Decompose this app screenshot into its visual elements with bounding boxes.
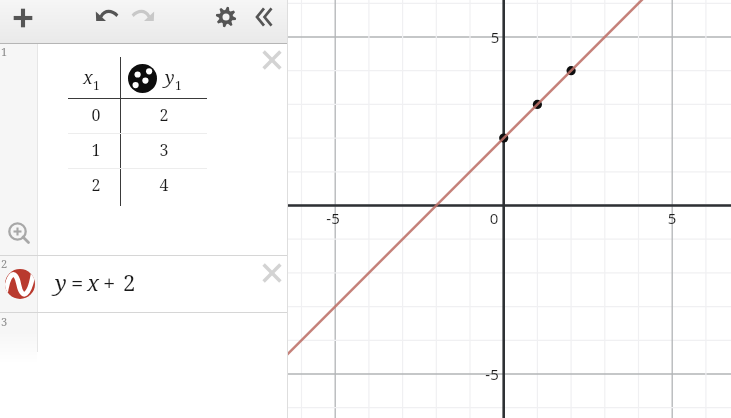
button[interactable]: Delete table [260, 48, 284, 72]
button[interactable]: 2 [0, 256, 288, 313]
staticText: 2 [149, 104, 179, 126]
staticText: 1 [93, 77, 100, 93]
button[interactable]: Settings [207, 0, 245, 36]
button[interactable]: Zoom to fit [7, 221, 32, 246]
staticText: 5 [475, 27, 515, 47]
staticText: 3 [149, 139, 179, 161]
staticText: 1 [1, 44, 8, 59]
staticText: y [165, 65, 175, 90]
button[interactable]: Toggle plot [5, 269, 35, 299]
staticText: -5 [472, 364, 512, 384]
staticText: 1 [81, 139, 111, 161]
button[interactable]: 1 [0, 44, 288, 256]
staticText: 3 [1, 314, 8, 329]
button[interactable]: Undo [88, 0, 126, 35]
staticText: x [87, 267, 100, 297]
button[interactable]: Delete expression [260, 261, 284, 285]
button[interactable]: Collapse panel [245, 0, 283, 36]
staticText: 1 [175, 77, 182, 93]
button[interactable]: Point style [128, 64, 157, 93]
staticText: 4 [149, 174, 179, 196]
button[interactable]: Add expression [4, 0, 42, 37]
staticText: y [55, 267, 67, 297]
button[interactable]: 3 [0, 313, 288, 362]
staticText: -5 [313, 208, 353, 228]
staticText: 2 [1, 256, 8, 271]
staticText: = [71, 267, 84, 297]
button[interactable]: Redo [124, 0, 162, 35]
staticText: 0 [474, 208, 514, 228]
staticText: 0 [81, 104, 111, 126]
staticText: 5 [652, 208, 692, 228]
staticText: x [83, 65, 93, 90]
staticText: + [103, 267, 116, 297]
staticText: 2 [81, 174, 111, 196]
staticText: 2 [123, 267, 136, 297]
